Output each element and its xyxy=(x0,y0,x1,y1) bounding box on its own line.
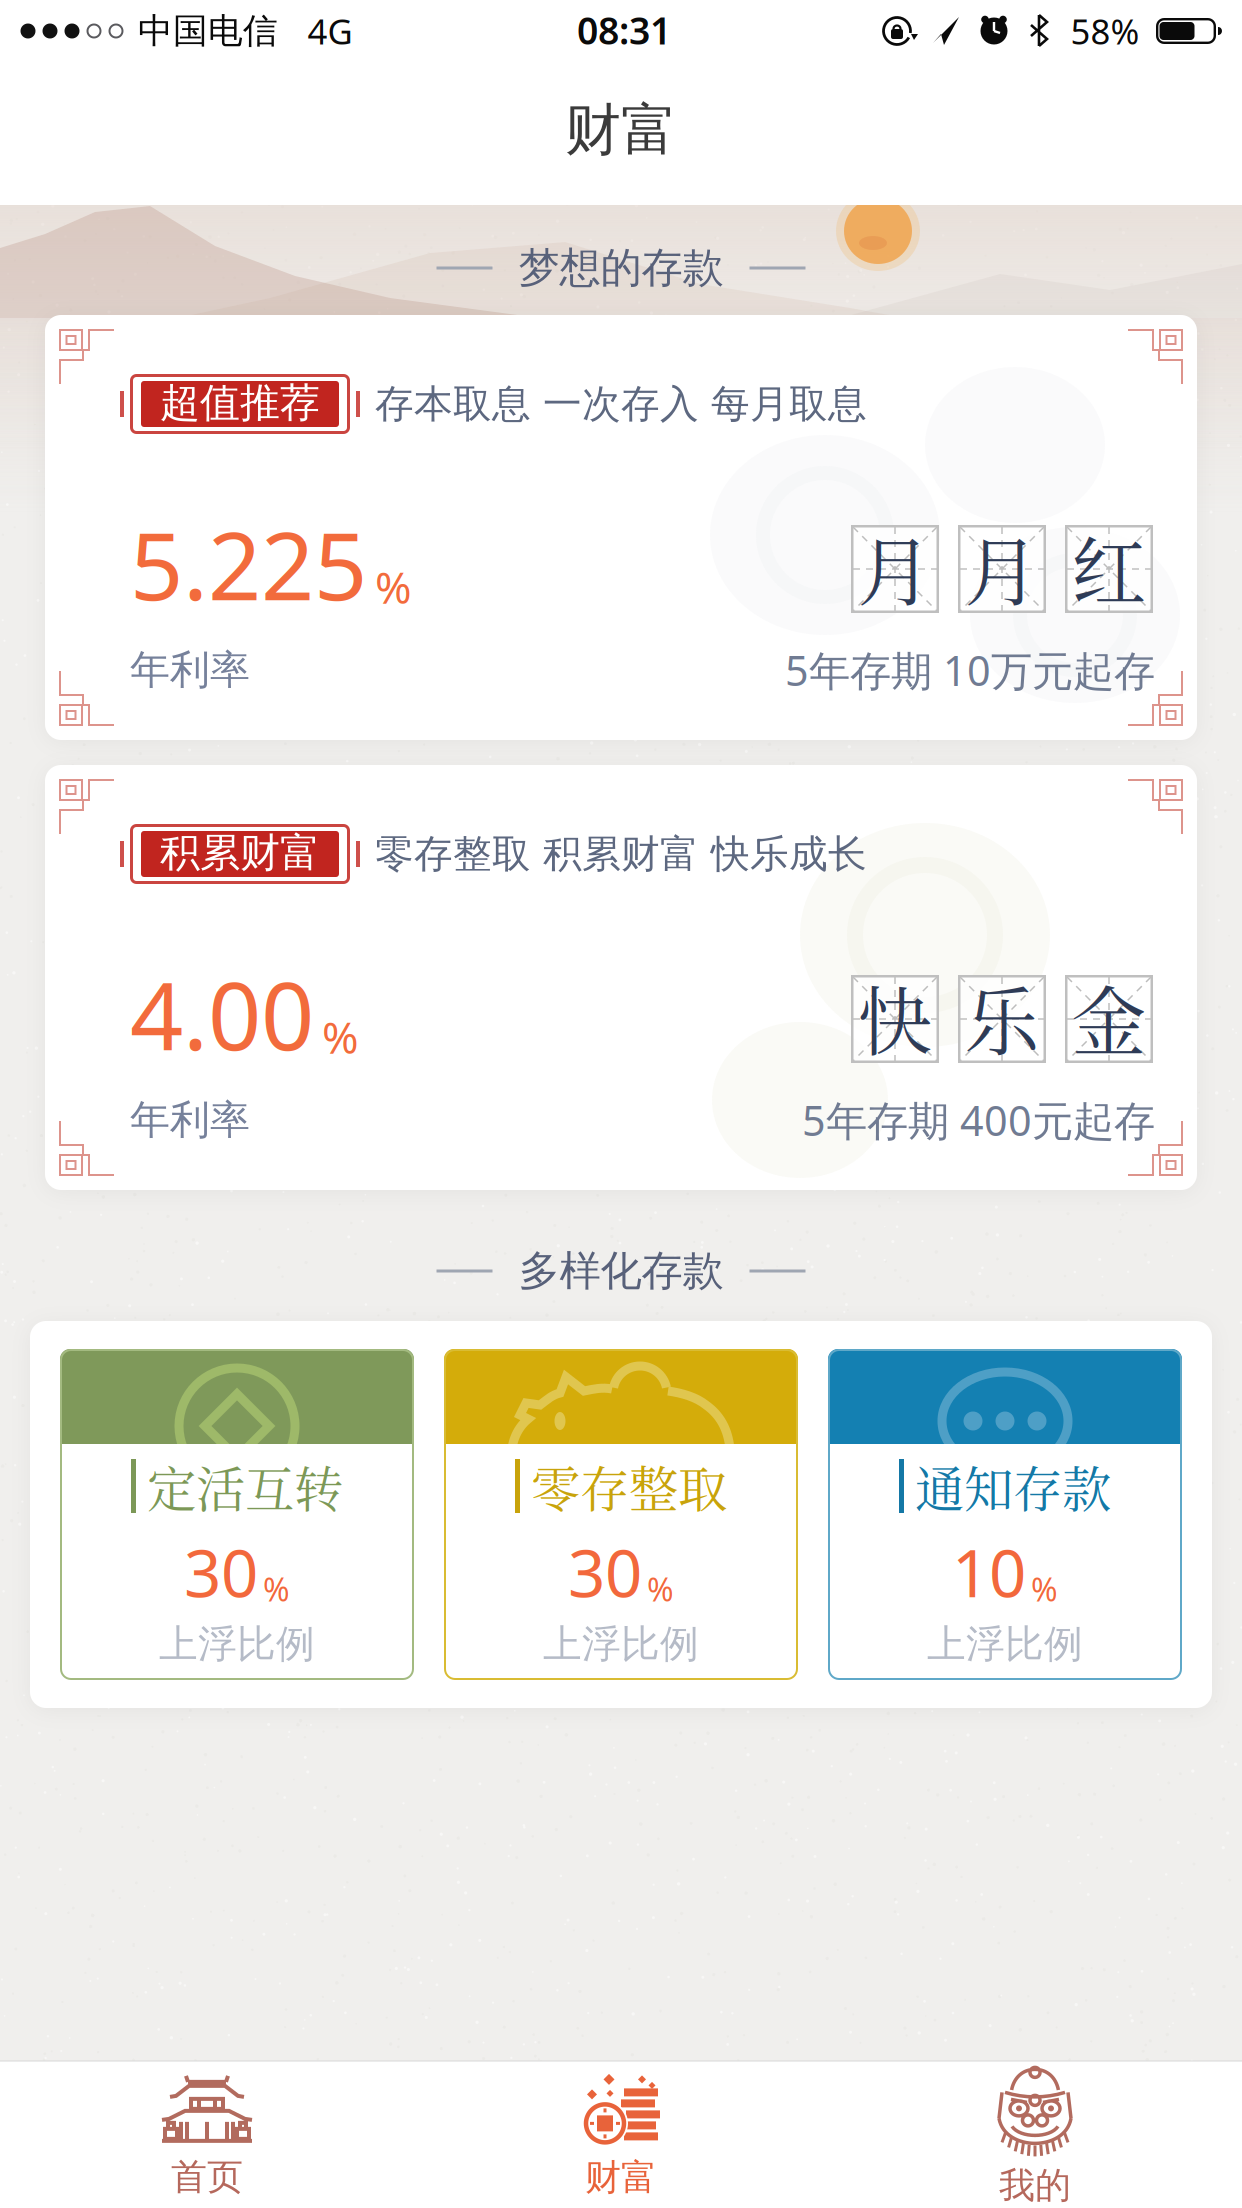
staticText: 10 xyxy=(952,1529,1026,1615)
staticText: 5.225 xyxy=(130,502,367,626)
button[interactable]: 通知存款 xyxy=(828,1349,1182,1680)
staticText: 58% xyxy=(1070,8,1139,54)
button[interactable]: 零存整取 xyxy=(444,1349,798,1680)
staticText: 红 xyxy=(1071,513,1146,621)
staticText: 4.00 xyxy=(130,952,314,1076)
staticText: % xyxy=(647,1568,674,1610)
staticText: 上浮比例 xyxy=(543,1620,699,1668)
staticText: 超值推荐 xyxy=(160,378,320,427)
staticText: 金 xyxy=(1071,963,1146,1071)
staticText: 快 xyxy=(857,963,932,1071)
staticText: % xyxy=(1031,1568,1058,1610)
staticText: 零存整取 积累财富 快乐成长 xyxy=(375,830,867,878)
staticText: 乐 xyxy=(964,963,1039,1071)
staticText: 存本取息 一次存入 每月取息 xyxy=(375,380,867,428)
staticText: 财富 xyxy=(585,2155,657,2200)
button[interactable]: 超值推荐 xyxy=(45,315,1197,740)
button[interactable]: 定活互转 xyxy=(60,1349,414,1680)
button[interactable]: 积累财富 xyxy=(45,765,1197,1190)
staticText: 上浮比例 xyxy=(927,1620,1083,1668)
button[interactable]: 我的 xyxy=(885,2067,1185,2207)
button[interactable]: 首页 xyxy=(57,2067,357,2207)
staticText: 零存整取 xyxy=(531,1451,727,1521)
staticText: 5年存期 400元起存 xyxy=(802,1093,1155,1147)
staticText: 年利率 xyxy=(130,645,250,694)
staticText: 首页 xyxy=(171,2155,243,2199)
staticText: 上浮比例 xyxy=(159,1620,315,1668)
staticText: 30 xyxy=(184,1529,258,1615)
staticText: 年利率 xyxy=(130,1095,250,1144)
staticText: 月 xyxy=(857,513,932,621)
staticText: 通知存款 xyxy=(915,1451,1111,1521)
staticText: 定活互转 xyxy=(147,1451,343,1521)
staticText: 多样化存款 xyxy=(518,1246,723,1296)
button[interactable]: 财富 xyxy=(471,2067,771,2207)
staticText: 财富 xyxy=(565,96,677,164)
staticText: 我的 xyxy=(999,2163,1071,2208)
staticText: 4G xyxy=(307,8,352,54)
staticText: 中国电信 xyxy=(138,10,278,52)
staticText: % xyxy=(263,1568,290,1610)
staticText: 08:31 xyxy=(577,5,671,55)
staticText: 梦想的存款 xyxy=(518,243,723,293)
staticText: % xyxy=(322,1008,359,1066)
staticText: % xyxy=(375,558,412,616)
staticText: 5年存期 10万元起存 xyxy=(785,643,1155,697)
staticText: 30 xyxy=(568,1529,642,1615)
staticText: 积累财富 xyxy=(160,828,320,877)
staticText: 月 xyxy=(964,513,1039,621)
